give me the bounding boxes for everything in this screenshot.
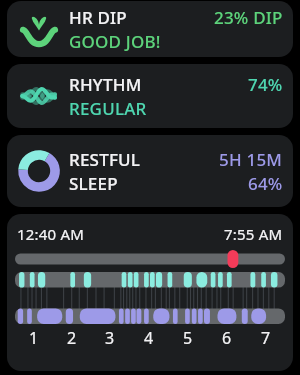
staticText: HR DIP (69, 6, 127, 29)
staticText: 74% (248, 73, 283, 96)
staticText: REGULAR (69, 97, 147, 120)
staticText: 7:55 AM (224, 224, 283, 244)
staticText: RESTFUL (69, 148, 141, 171)
staticText: SLEEP (69, 172, 118, 195)
staticText: 1 (29, 327, 39, 349)
staticText: 7 (261, 327, 271, 349)
staticText: 2 (67, 327, 77, 349)
button[interactable]: Sleep ring (7, 135, 293, 207)
staticText: 5H 15M (219, 148, 283, 171)
other: Heart rhythm (19, 76, 59, 116)
staticText: 12:40 AM (17, 224, 85, 244)
staticText: 4 (144, 327, 154, 349)
staticText: 64% (248, 172, 283, 195)
staticText: 3 (105, 327, 115, 349)
staticText: 5 (183, 327, 193, 349)
staticText: GOOD JOB! (69, 30, 161, 53)
other: Sleep ring (19, 151, 59, 191)
staticText: 6 (222, 327, 232, 349)
button[interactable]: 12:40 AM (7, 214, 293, 371)
button[interactable]: Heart rate dip (7, 1, 293, 57)
other: Heart rate dip (19, 9, 59, 49)
staticText: RHYTHM (69, 73, 142, 96)
staticText: 23% DIP (214, 6, 283, 29)
button[interactable]: Heart rhythm (7, 64, 293, 128)
